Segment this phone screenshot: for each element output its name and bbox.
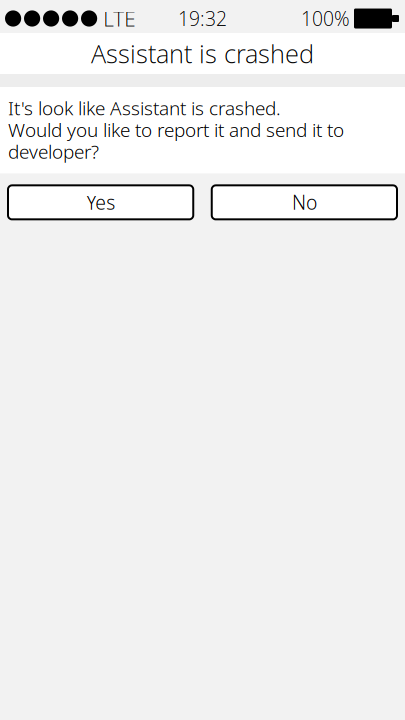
staticText: No <box>292 189 317 215</box>
staticText: It's look like Assistant is crashed. <box>8 95 281 121</box>
button[interactable]: Yes <box>8 185 193 219</box>
staticText: developer? <box>8 139 99 164</box>
staticText: Assistant is crashed <box>91 36 314 71</box>
staticText: Would you like to report it and send it … <box>8 117 344 143</box>
staticText: Yes <box>86 189 115 215</box>
staticText: 100% <box>301 5 350 32</box>
staticText: 19:32 <box>178 5 227 32</box>
button[interactable]: No <box>212 185 397 219</box>
staticText: LTE <box>103 4 135 32</box>
